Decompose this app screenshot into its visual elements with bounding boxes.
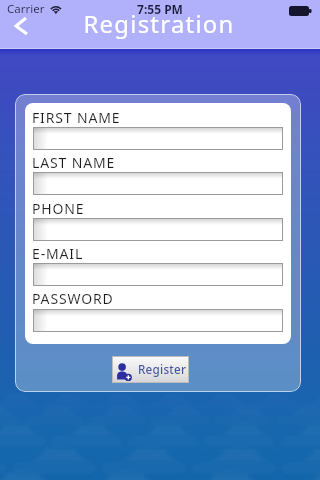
staticText: LAST NAME: [32, 153, 116, 172]
button[interactable]: [33, 127, 283, 150]
staticText: FIRST NAME: [32, 108, 121, 127]
staticText: Registration: [0, 8, 319, 40]
button[interactable]: [33, 172, 283, 195]
staticText: 7:55 PM: [0, 1, 320, 17]
staticText: PHONE: [32, 199, 85, 218]
button[interactable]: [33, 263, 283, 286]
staticText: Register: [138, 361, 187, 377]
button[interactable]: [33, 218, 283, 241]
button[interactable]: Back: [8, 12, 36, 40]
button[interactable]: Register: [112, 356, 189, 383]
staticText: E-MAIL: [32, 244, 84, 263]
button[interactable]: [33, 309, 283, 332]
staticText: Carrier: [7, 1, 45, 17]
staticText: PASSWORD: [32, 289, 114, 308]
